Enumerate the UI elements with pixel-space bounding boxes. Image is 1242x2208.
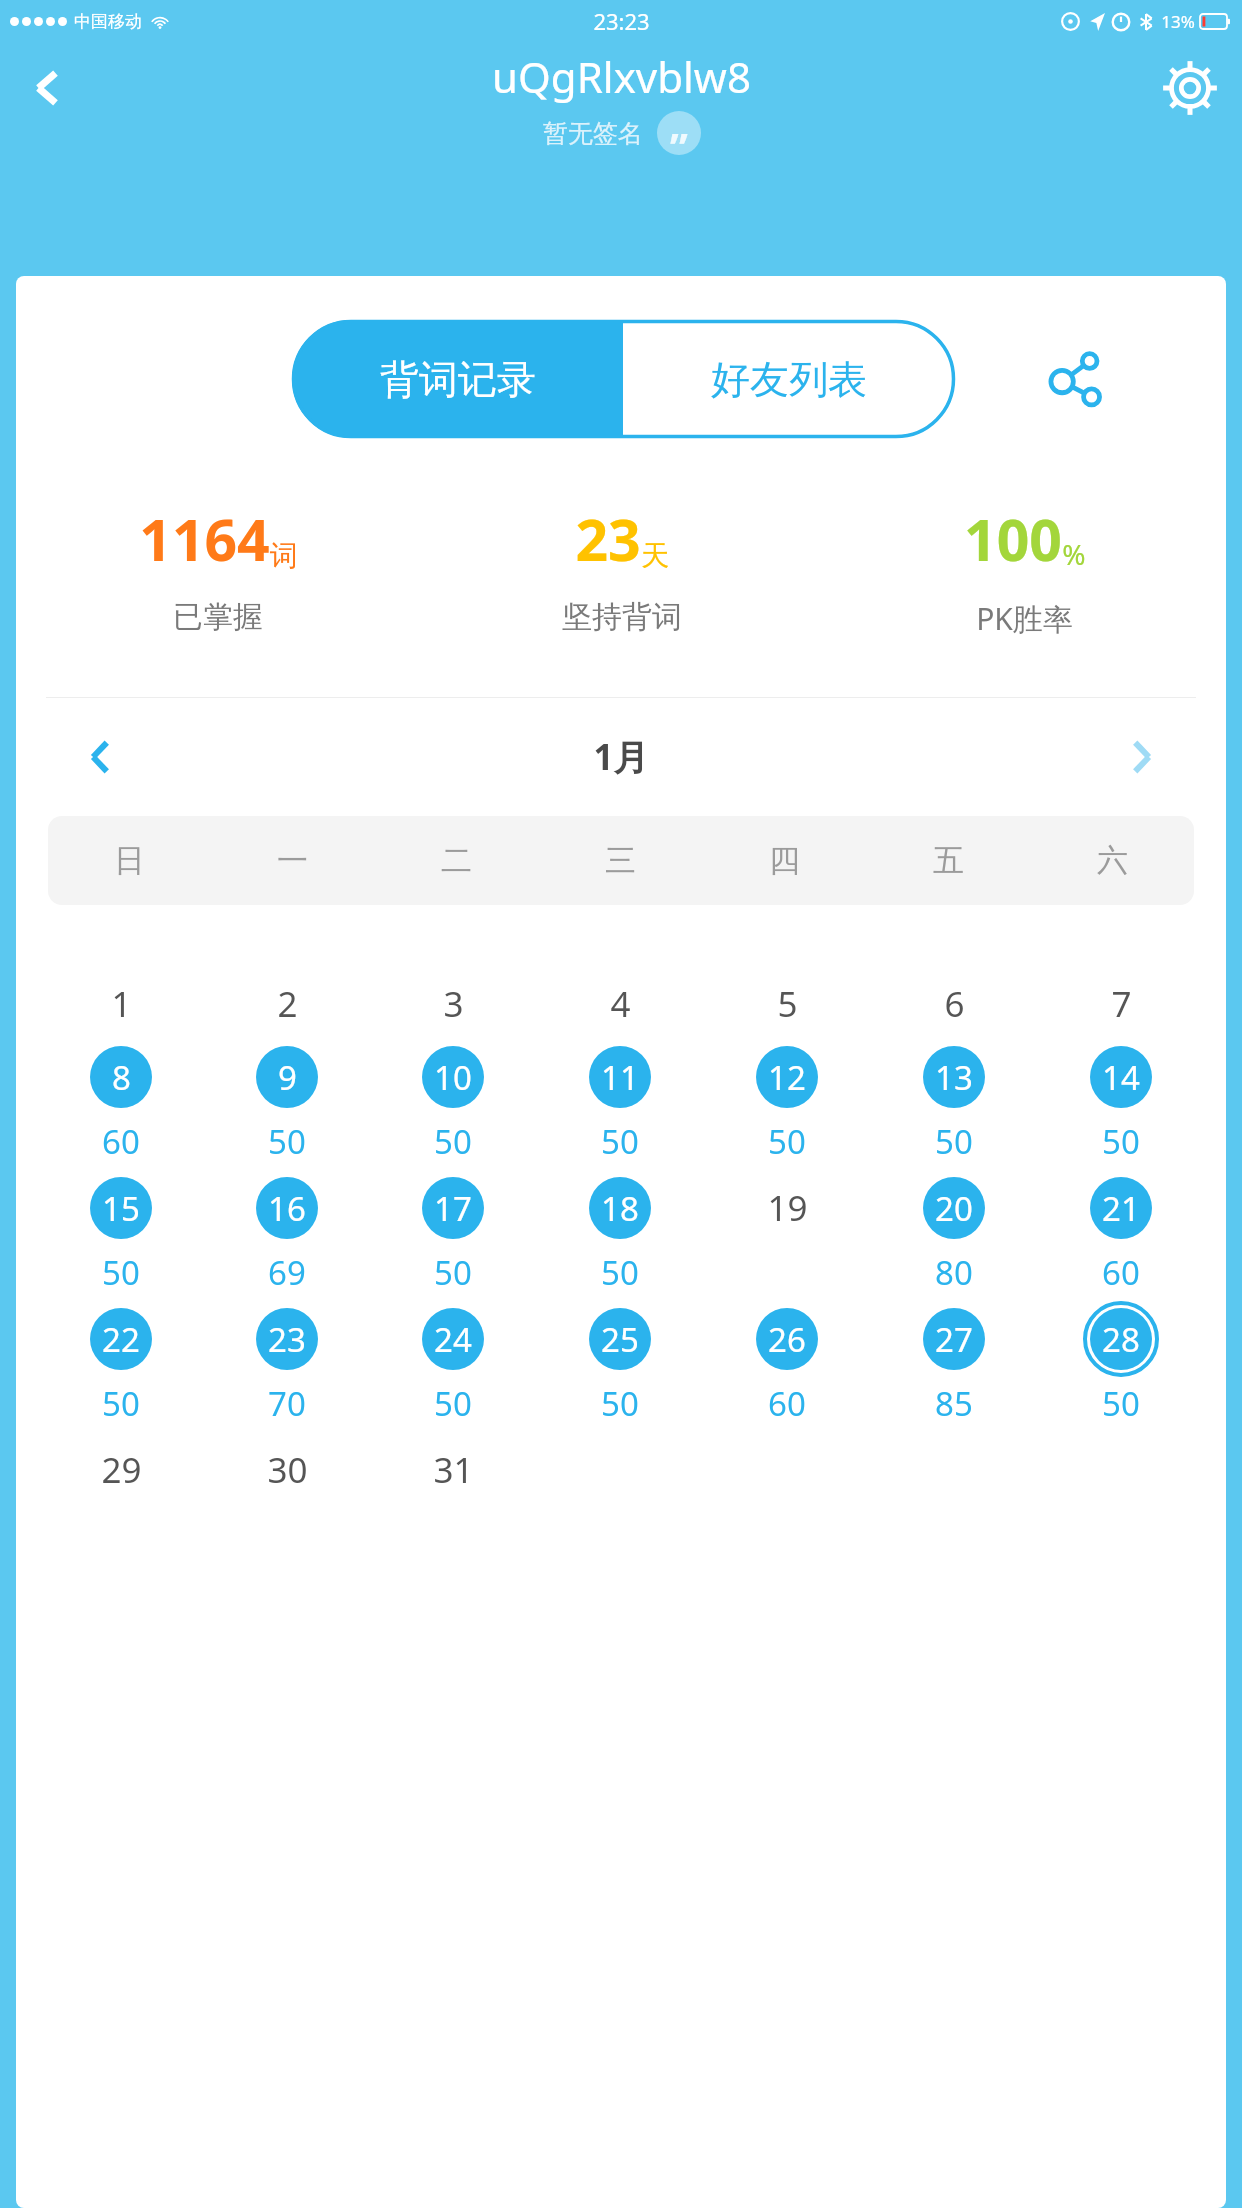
staticText: 9 (278, 1055, 297, 1100)
staticText: 60 (1102, 1250, 1140, 1295)
staticText: 8 (112, 1055, 131, 1100)
staticText: 50 (102, 1250, 140, 1295)
staticText: 80 (935, 1250, 973, 1295)
staticText: 23 (268, 1317, 306, 1362)
button[interactable]: Settings (1148, 46, 1232, 130)
staticText: 六 (1097, 841, 1128, 880)
staticText: 三 (605, 841, 636, 880)
staticText: 69 (268, 1250, 306, 1295)
button[interactable]: 29 (83, 1432, 159, 1508)
button[interactable]: 3 (415, 969, 491, 1039)
button[interactable]: 9 (249, 1039, 325, 1164)
button[interactable]: 17 (415, 1170, 491, 1295)
staticText: 50 (601, 1250, 639, 1295)
button[interactable]: 背词记录 (292, 320, 623, 438)
staticText: 60 (102, 1119, 140, 1164)
button[interactable]: 23 (249, 1301, 325, 1426)
staticText: 19 (767, 1184, 808, 1232)
button[interactable]: 1164 (16, 500, 420, 636)
staticText: 29 (101, 1446, 142, 1494)
button[interactable]: 12 (749, 1039, 825, 1164)
staticText: 31 (433, 1446, 474, 1494)
staticText: 18 (601, 1186, 639, 1231)
staticText: 背词记录 (380, 355, 536, 404)
staticText: 1164 (139, 500, 270, 578)
button[interactable]: 21 (1083, 1170, 1159, 1295)
button[interactable]: 28 (1083, 1301, 1159, 1426)
button[interactable]: 1 (83, 969, 159, 1039)
button[interactable]: Previous month (56, 712, 146, 802)
button[interactable]: 23 (420, 500, 823, 636)
staticText: 100 (964, 500, 1062, 578)
button[interactable]: 13 (916, 1039, 992, 1164)
staticText: 一 (277, 841, 308, 880)
button[interactable]: 14 (1083, 1039, 1159, 1164)
button[interactable]: 27 (916, 1301, 992, 1426)
staticText: 四 (769, 841, 800, 880)
staticText: 4 (610, 980, 631, 1028)
staticText: 24 (434, 1317, 472, 1362)
button[interactable]: 好友列表 (623, 320, 955, 438)
staticText: 14 (1102, 1055, 1140, 1100)
staticText: 3 (443, 980, 464, 1028)
button[interactable]: 20 (916, 1170, 992, 1295)
staticText: 二 (441, 841, 472, 880)
staticText: 25 (601, 1317, 639, 1362)
staticText: 50 (434, 1381, 472, 1426)
staticText: 坚持背词 (562, 598, 682, 636)
staticText: 50 (434, 1250, 472, 1295)
staticText: 85 (935, 1381, 973, 1426)
button[interactable]: 15 (83, 1170, 159, 1295)
button[interactable]: 18 (582, 1170, 658, 1295)
staticText: 27 (935, 1317, 973, 1362)
staticText: 50 (935, 1119, 973, 1164)
button[interactable]: 100 (823, 500, 1226, 639)
button[interactable]: 11 (582, 1039, 658, 1164)
staticText: 50 (601, 1381, 639, 1426)
staticText: 6 (944, 980, 965, 1028)
staticText: 5 (777, 980, 798, 1028)
staticText: PK胜率 (976, 598, 1073, 639)
staticText: 天 (641, 538, 669, 573)
button[interactable]: 10 (415, 1039, 491, 1164)
button[interactable]: 4 (582, 969, 658, 1039)
button[interactable]: Next month (1096, 712, 1186, 802)
staticText: 50 (768, 1119, 806, 1164)
staticText: 60 (768, 1381, 806, 1426)
button[interactable]: Back (10, 50, 86, 126)
button[interactable]: 6 (916, 969, 992, 1039)
button[interactable]: 25 (582, 1301, 658, 1426)
staticText: 23:23 (593, 6, 650, 36)
button[interactable]: 16 (249, 1170, 325, 1295)
button[interactable]: Share (1018, 324, 1128, 434)
staticText: 17 (434, 1186, 472, 1231)
staticText: 暂无签名 (543, 118, 643, 149)
button[interactable]: 2 (249, 969, 325, 1039)
button[interactable]: 30 (249, 1432, 325, 1508)
button[interactable]: 8 (83, 1039, 159, 1164)
staticText: 50 (1102, 1119, 1140, 1164)
staticText: 11 (601, 1055, 639, 1100)
staticText: 15 (102, 1186, 140, 1231)
button[interactable]: 24 (415, 1301, 491, 1426)
button[interactable]: 31 (415, 1432, 491, 1508)
button[interactable]: 22 (83, 1301, 159, 1426)
staticText: 13% (1161, 10, 1195, 33)
staticText: 10 (434, 1055, 472, 1100)
staticText: 26 (768, 1317, 806, 1362)
staticText: 50 (601, 1119, 639, 1164)
staticText: 20 (935, 1186, 973, 1231)
button[interactable]: 26 (749, 1301, 825, 1426)
staticText: 70 (268, 1381, 306, 1426)
staticText: 50 (268, 1119, 306, 1164)
button[interactable]: 7 (1083, 969, 1159, 1039)
staticText: 13 (935, 1055, 973, 1100)
button[interactable]: 19 (749, 1170, 825, 1246)
staticText: 五 (933, 841, 964, 880)
staticText: 词 (270, 538, 298, 573)
staticText: 50 (434, 1119, 472, 1164)
staticText: 50 (1102, 1381, 1140, 1426)
button[interactable]: 5 (749, 969, 825, 1039)
staticText: 1月 (593, 733, 649, 781)
staticText: 50 (102, 1381, 140, 1426)
